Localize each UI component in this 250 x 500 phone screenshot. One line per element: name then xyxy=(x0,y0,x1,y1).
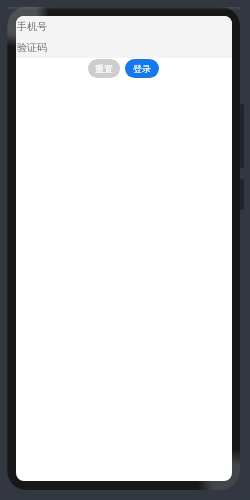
button[interactable]: 验证码 xyxy=(16,37,232,58)
staticText: 验证码 xyxy=(17,41,47,54)
staticText: 登录 xyxy=(133,63,151,74)
button[interactable]: 手机号 xyxy=(16,16,232,37)
button[interactable]: 重置 xyxy=(88,59,120,78)
staticText: 重置 xyxy=(95,63,113,74)
button[interactable]: 登录 xyxy=(125,59,159,78)
staticText: 手机号 xyxy=(17,20,47,33)
